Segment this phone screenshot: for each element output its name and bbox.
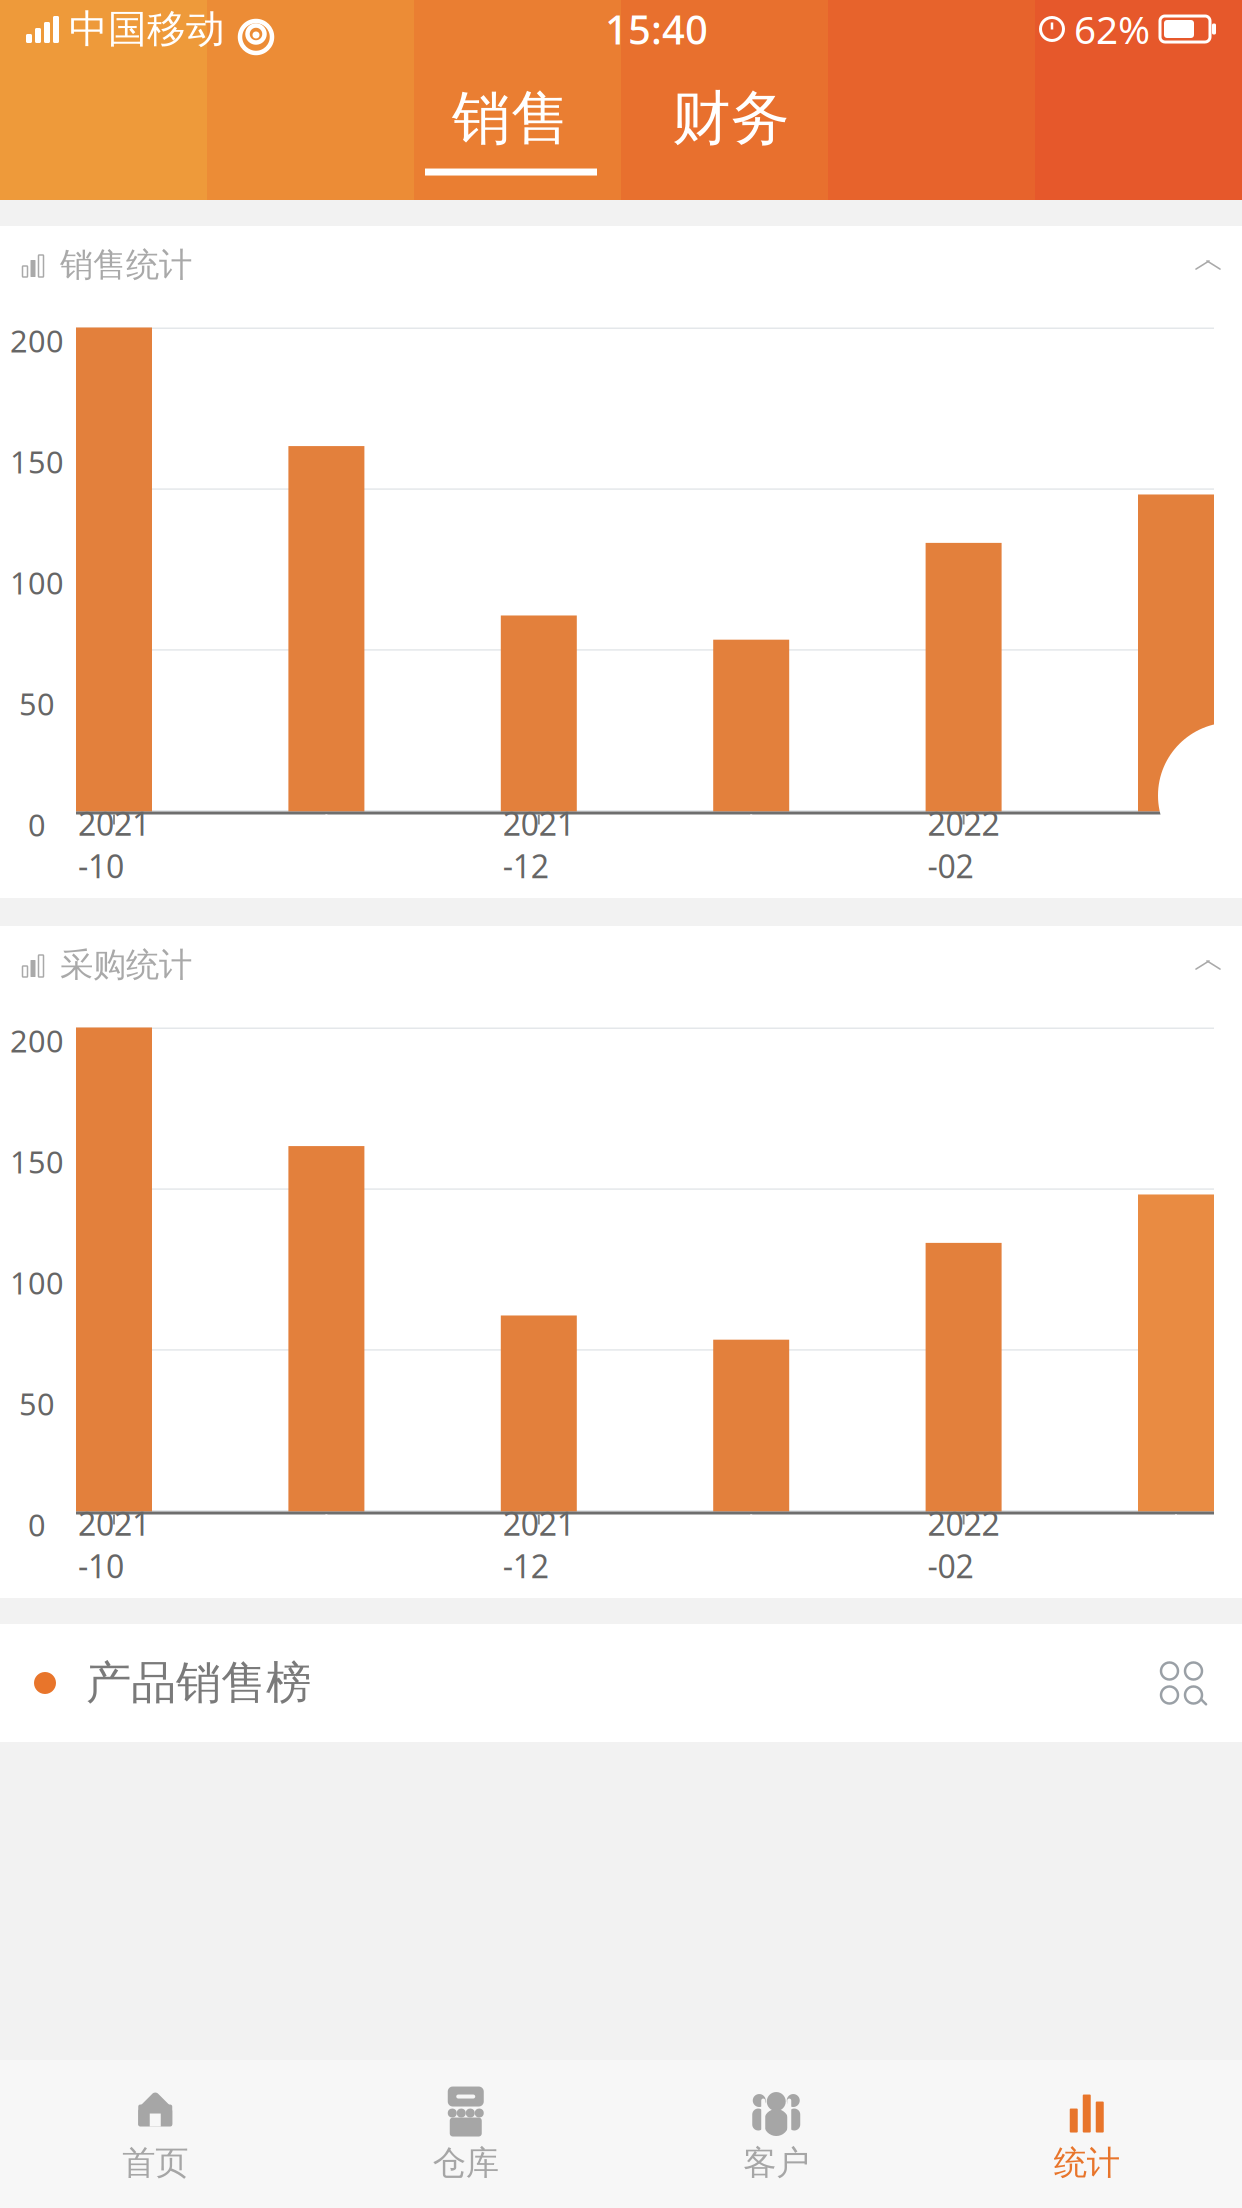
staticText: 15:40: [605, 2, 708, 55]
staticText: 100: [10, 1262, 64, 1303]
staticText: 产品销售榜: [86, 1655, 311, 1711]
staticText: 0: [28, 1504, 46, 1545]
staticText: 200: [10, 320, 64, 361]
staticText: 0: [28, 804, 46, 845]
staticText: 50: [19, 1383, 55, 1424]
staticText: 2022-02: [928, 1502, 1000, 1587]
button[interactable]: 统计: [931, 2060, 1242, 2208]
button[interactable]: 首页: [0, 2060, 310, 2208]
staticText: 2021-10: [78, 1502, 150, 1587]
staticText: 中国移动: [69, 5, 225, 53]
button[interactable]: 采购统计: [0, 926, 1242, 1004]
staticText: 150: [10, 1141, 64, 1182]
button[interactable]: 产品销售榜: [0, 1624, 1242, 1742]
staticText: 150: [10, 441, 64, 482]
staticText: 2021-12: [503, 1502, 575, 1587]
staticText: 100: [10, 562, 64, 603]
staticText: 销售: [452, 82, 570, 155]
button[interactable]: 销售统计: [0, 226, 1242, 304]
staticText: 客户: [743, 2142, 809, 2183]
staticText: 仓库: [433, 2142, 499, 2183]
staticText: 采购统计: [60, 944, 192, 985]
staticText: 200: [10, 1020, 64, 1061]
staticText: 财务: [672, 82, 790, 155]
staticText: 首页: [122, 2142, 188, 2183]
staticText: 50: [19, 683, 55, 724]
button[interactable]: 销售: [401, 82, 621, 176]
staticText: 2021-12: [503, 802, 575, 887]
staticText: 统计: [1054, 2142, 1120, 2183]
staticText: 销售统计: [60, 244, 192, 285]
staticText: 2021-10: [78, 802, 150, 887]
button[interactable]: 客户: [621, 2060, 931, 2208]
button[interactable]: 仓库: [310, 2060, 621, 2208]
button[interactable]: 财务: [621, 82, 841, 176]
staticText: 62%: [1074, 3, 1150, 55]
staticText: 2022-02: [928, 802, 1000, 887]
